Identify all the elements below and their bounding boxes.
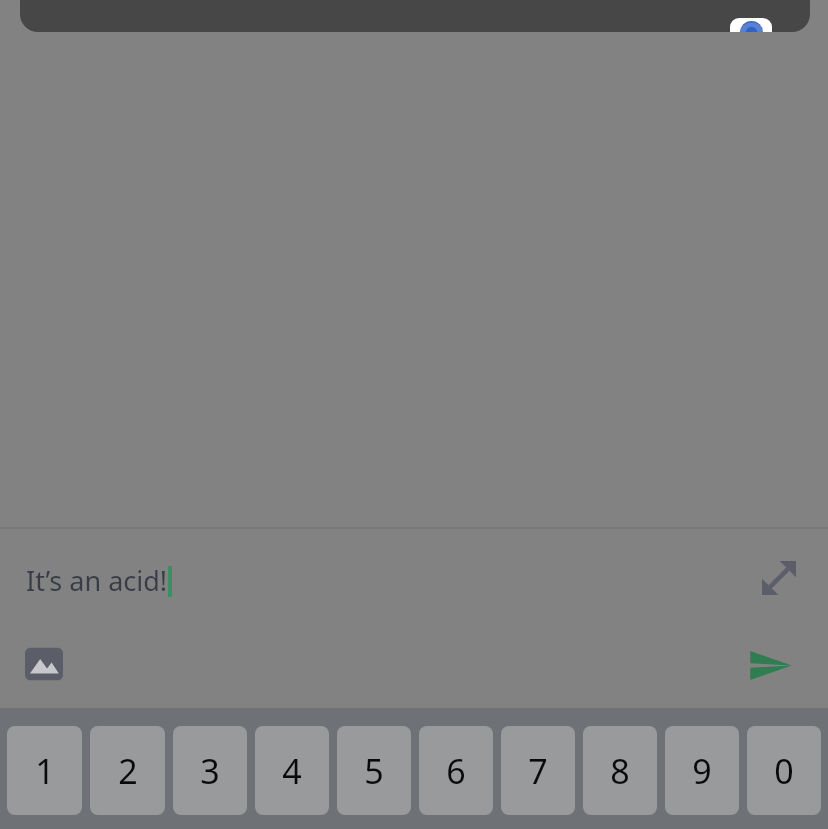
button[interactable]: 0 [747,726,821,815]
staticText: 0 [774,748,794,794]
button[interactable]: 9 [665,726,739,815]
button[interactable]: Expand [748,547,810,609]
button[interactable]: 8 [583,726,657,815]
button[interactable]: 1 [7,726,82,815]
staticText: 3 [200,748,220,794]
button[interactable]: 7 [501,726,575,815]
staticText: 9 [692,748,712,794]
button[interactable]: Insert image [14,634,74,694]
staticText: It’s an acid! [26,562,168,599]
staticText: 7 [528,748,548,794]
button[interactable]: 4 [255,726,329,815]
button[interactable]: 6 [419,726,493,815]
button[interactable]: 2 [90,726,165,815]
staticText: 1 [35,748,55,794]
button[interactable]: It’s an acid! [26,562,172,599]
staticText: 4 [282,748,302,794]
staticText: 5 [364,748,384,794]
staticText: 2 [118,748,138,794]
button[interactable]: 3 [173,726,247,815]
button[interactable]: 5 [337,726,411,815]
staticText: 8 [610,748,630,794]
button[interactable]: Send [737,632,803,698]
button[interactable] [20,0,810,32]
staticText: 6 [446,748,466,794]
